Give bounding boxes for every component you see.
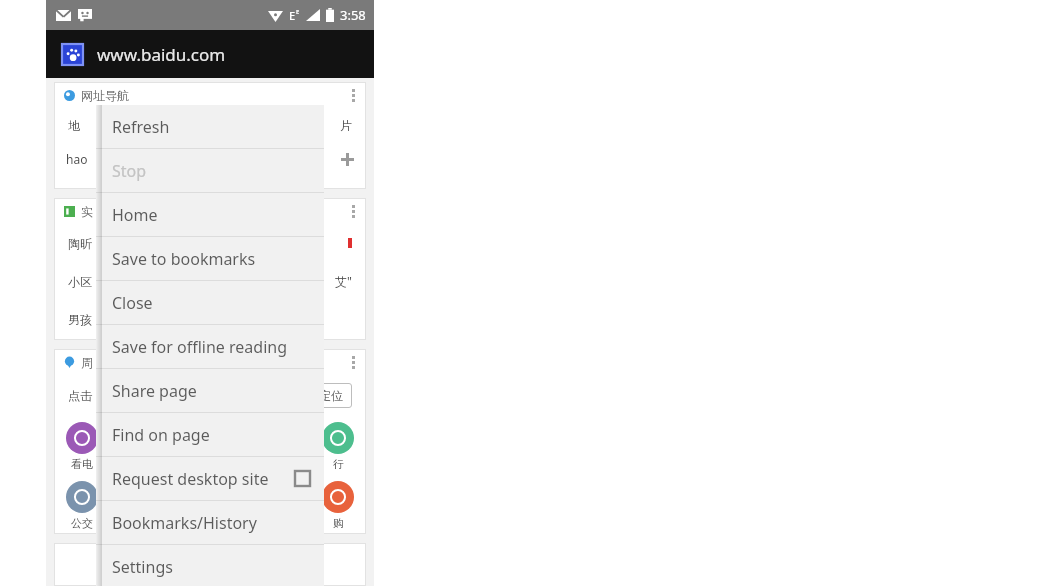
button[interactable]: Site icon <box>46 30 374 78</box>
staticText: Home <box>112 204 158 226</box>
staticText: 定位 <box>319 388 343 403</box>
button[interactable]: Save for offline reading <box>96 325 324 368</box>
button[interactable]: Settings <box>96 545 324 586</box>
staticText: Request desktop site <box>112 468 269 490</box>
button[interactable]: 男孩 <box>54 300 366 338</box>
button[interactable]: More options <box>347 351 360 374</box>
other: Site icon <box>62 44 83 65</box>
button[interactable]: 小区 <box>54 262 366 300</box>
staticText: 小区 <box>68 274 92 289</box>
staticText: Find on page <box>112 424 210 446</box>
button[interactable]: 公交 <box>66 481 98 530</box>
button[interactable]: More options <box>347 84 360 107</box>
staticText: Close <box>112 292 153 314</box>
staticText: www.baidu.com <box>97 43 226 66</box>
staticText: Settings <box>112 556 173 578</box>
staticText: 网址导航 <box>81 88 129 103</box>
button[interactable]: Bookmarks/History <box>96 501 324 544</box>
button[interactable]: Share page <box>96 369 324 412</box>
button[interactable]: Find on page <box>96 413 324 456</box>
staticText: 3:58 <box>340 6 366 24</box>
staticText: 陶昕 <box>68 236 92 251</box>
staticText: Bookmarks/History <box>112 512 257 534</box>
button[interactable]: 购 <box>322 481 354 530</box>
button[interactable]: More options <box>347 200 360 223</box>
staticText: 购 <box>333 516 344 530</box>
staticText: Save to bookmarks <box>112 248 256 270</box>
button: Stop <box>96 149 324 192</box>
staticText: 行 <box>333 457 344 471</box>
button[interactable]: Close <box>96 281 324 324</box>
staticText: Stop <box>112 160 147 182</box>
staticText: 周 <box>81 355 93 370</box>
button[interactable]: 看电 <box>66 422 98 471</box>
staticText: 实 <box>81 204 93 219</box>
staticText: E <box>289 8 296 23</box>
staticText: 片 <box>340 118 352 133</box>
button[interactable]: Save to bookmarks <box>96 237 324 280</box>
staticText: 艾" <box>335 273 352 289</box>
button[interactable]: Request desktop site <box>96 457 324 500</box>
staticText: 看电 <box>71 457 93 471</box>
staticText: 公交 <box>71 516 93 530</box>
button[interactable]: Home <box>96 193 324 236</box>
staticText: Share page <box>112 380 197 402</box>
button[interactable]: 行 <box>322 422 354 471</box>
staticText: 地 <box>68 118 80 133</box>
button[interactable]: 陶昕 <box>54 224 366 262</box>
staticText: 点击 <box>68 388 92 403</box>
staticText: hao <box>66 151 88 167</box>
staticText: Refresh <box>112 116 170 138</box>
staticText: 男孩 <box>68 312 92 327</box>
button[interactable]: Refresh <box>96 105 324 148</box>
staticText: E <box>296 8 300 16</box>
button[interactable]: 定位 <box>310 383 352 408</box>
staticText: Save for offline reading <box>112 336 288 358</box>
